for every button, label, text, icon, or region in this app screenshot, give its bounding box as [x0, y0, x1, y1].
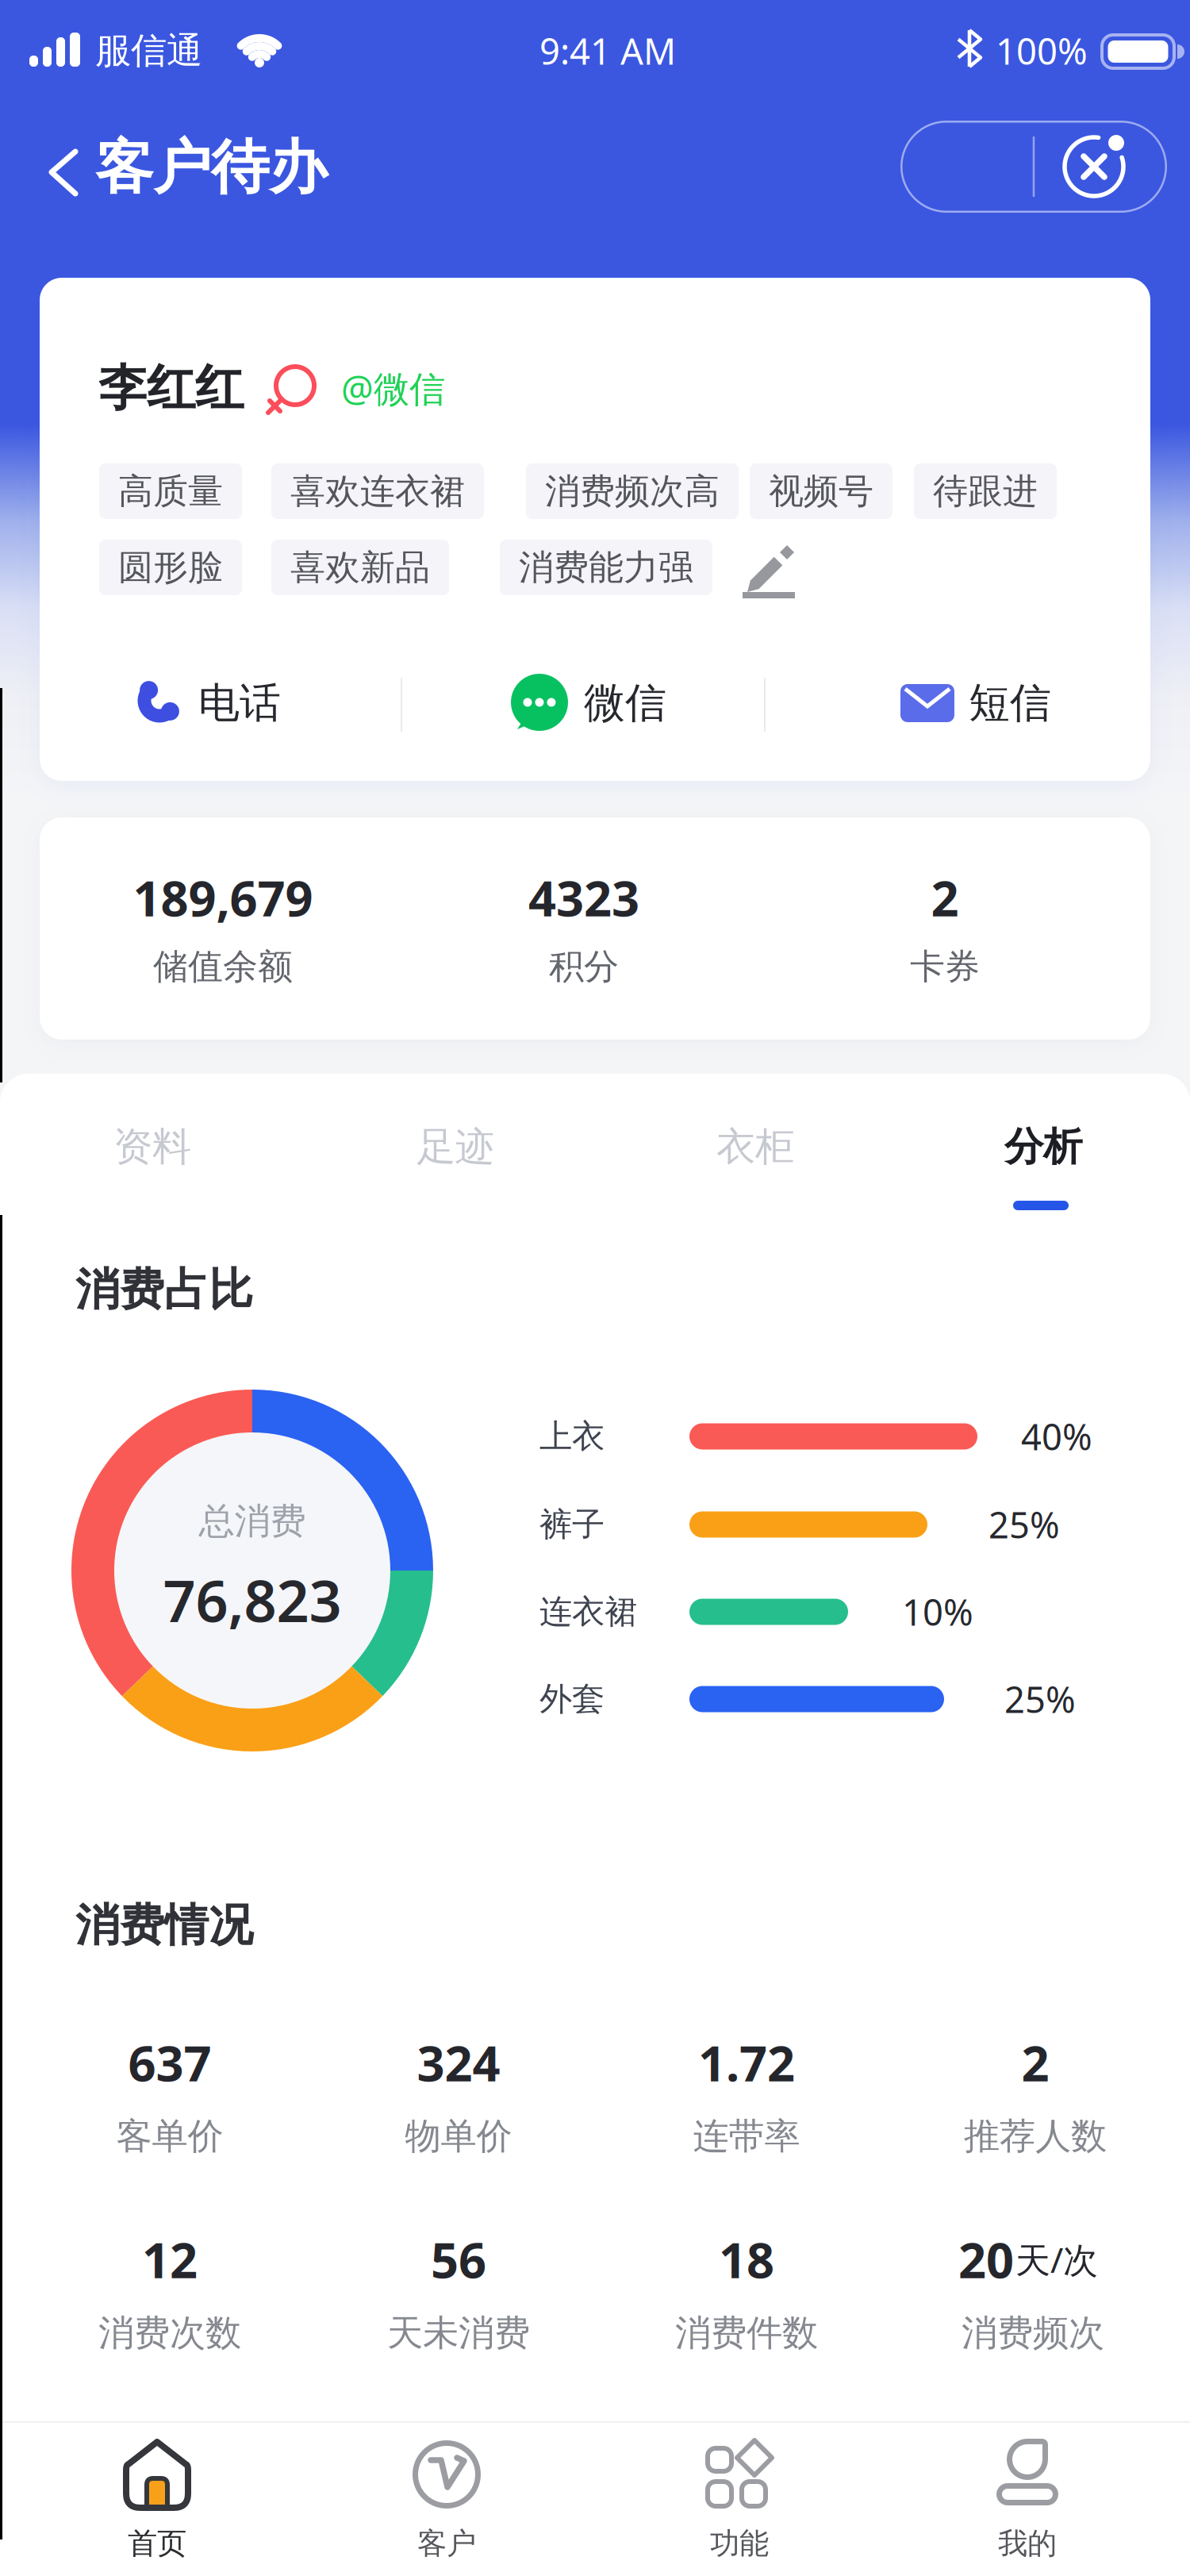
staticText: 推荐人数: [964, 2114, 1107, 2158]
staticText: 2: [1021, 2030, 1049, 2095]
staticText: 4323: [528, 865, 639, 930]
staticText: 服信通: [95, 29, 202, 73]
staticText: 1.72: [698, 2030, 795, 2095]
staticText: 首页: [128, 2525, 186, 2562]
staticText: 9:41 AM: [539, 27, 676, 75]
staticText: 连带率: [693, 2114, 800, 2158]
staticText: 100%: [996, 27, 1088, 75]
button[interactable]: SMS: [805, 652, 1146, 755]
button[interactable]: 首页: [14, 2421, 300, 2576]
staticText: 消费频次高: [545, 470, 720, 513]
button[interactable]: Close: [900, 121, 1167, 213]
staticText: 12: [142, 2227, 198, 2292]
staticText: 外套: [539, 1679, 605, 1719]
staticText: 积分: [549, 945, 619, 988]
button[interactable]: 客户: [304, 2421, 589, 2576]
staticText: 消费占比: [75, 1262, 253, 1317]
button[interactable]: Edit tags: [736, 531, 804, 599]
staticText: 分析: [1004, 1123, 1082, 1171]
staticText: 储值余额: [153, 945, 293, 988]
button[interactable]: WeChat: [417, 652, 758, 755]
staticText: 客户待办: [95, 132, 327, 203]
staticText: 76,823: [163, 1562, 342, 1638]
staticText: 喜欢新品: [290, 546, 430, 589]
staticText: 资料: [113, 1123, 191, 1171]
button[interactable]: 我的: [885, 2421, 1170, 2576]
staticText: 消费情况: [75, 1898, 253, 1953]
button[interactable]: 衣柜: [660, 1103, 850, 1190]
staticText: 消费件数: [675, 2311, 818, 2355]
staticText: 消费能力强: [519, 546, 693, 589]
staticText: 18: [719, 2227, 774, 2292]
staticText: 天未消费: [387, 2311, 530, 2355]
button[interactable]: 资料: [57, 1103, 248, 1190]
staticText: 衣柜: [716, 1123, 794, 1171]
staticText: 客户: [417, 2525, 476, 2562]
staticText: 上衣: [539, 1416, 605, 1457]
button[interactable]: 功能: [597, 2421, 882, 2576]
button[interactable]: Back: [12, 121, 107, 216]
staticText: 功能: [710, 2525, 769, 2562]
staticText: 微信: [584, 678, 666, 729]
staticText: 天/次: [1015, 2236, 1098, 2283]
staticText: 总消费: [199, 1499, 306, 1543]
staticText: 电话: [198, 678, 281, 729]
staticText: 消费频次: [962, 2311, 1104, 2355]
staticText: 324: [417, 2030, 500, 2095]
staticText: 待跟进: [933, 470, 1038, 513]
staticText: 10%: [902, 1588, 973, 1636]
button[interactable]: Call: [36, 652, 378, 755]
staticText: 20: [958, 2227, 1014, 2292]
staticText: 消费次数: [98, 2311, 241, 2355]
staticText: 喜欢连衣裙: [290, 470, 465, 513]
button[interactable]: 分析: [948, 1103, 1138, 1190]
staticText: 裤子: [539, 1504, 605, 1545]
staticText: 客单价: [116, 2114, 223, 2158]
staticText: 李红红: [98, 358, 244, 418]
staticText: 25%: [988, 1501, 1060, 1548]
staticText: 足迹: [416, 1123, 494, 1171]
staticText: 高质量: [118, 470, 223, 513]
staticText: 连衣裙: [539, 1592, 637, 1632]
staticText: 我的: [998, 2525, 1057, 2562]
staticText: 2: [931, 865, 959, 930]
staticText: 卡券: [910, 945, 980, 988]
staticText: @微信: [341, 364, 445, 412]
staticText: 短信: [969, 678, 1051, 729]
staticText: 40%: [1021, 1413, 1092, 1460]
staticText: 圆形脸: [118, 546, 223, 589]
staticText: 25%: [1004, 1675, 1076, 1723]
staticText: 189,679: [133, 865, 313, 930]
staticText: 637: [128, 2030, 211, 2095]
staticText: 视频号: [769, 470, 873, 513]
staticText: 物单价: [405, 2114, 512, 2158]
staticText: 56: [431, 2227, 486, 2292]
button[interactable]: 足迹: [360, 1103, 551, 1190]
